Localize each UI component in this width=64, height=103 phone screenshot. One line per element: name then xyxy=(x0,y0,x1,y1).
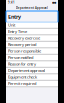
button[interactable]: Reason for entry xyxy=(6,61,58,68)
staticText: Recovery period xyxy=(8,42,36,47)
staticText: Reason for entry xyxy=(8,61,36,67)
button[interactable]: Recovery exercise xyxy=(6,35,58,42)
button[interactable]: Equipment check xyxy=(6,74,58,81)
staticText: 9:41 xyxy=(8,1,15,4)
button[interactable]: Recovery period xyxy=(6,42,58,48)
button[interactable]: Person notified xyxy=(6,55,58,61)
button[interactable]: Person responsible xyxy=(6,48,58,55)
button[interactable]: Department approval xyxy=(6,68,58,74)
staticText: Person responsible xyxy=(8,48,41,54)
button[interactable]: Permit required xyxy=(6,81,58,87)
staticText: Equipment check xyxy=(8,74,37,80)
staticText: Entry xyxy=(8,13,21,20)
staticText: Entry Time xyxy=(8,29,27,34)
staticText: Recovery exercise xyxy=(8,35,40,41)
button[interactable]: Unit xyxy=(6,22,58,29)
staticText: Unit xyxy=(8,22,15,28)
staticText: Permit required xyxy=(8,81,36,86)
staticText: ●● xyxy=(52,1,56,4)
button[interactable]: Entry Time xyxy=(6,29,58,35)
staticText: Department Approval xyxy=(16,6,48,10)
staticText: Department approval xyxy=(8,68,45,73)
staticText: Person notified xyxy=(8,55,33,60)
